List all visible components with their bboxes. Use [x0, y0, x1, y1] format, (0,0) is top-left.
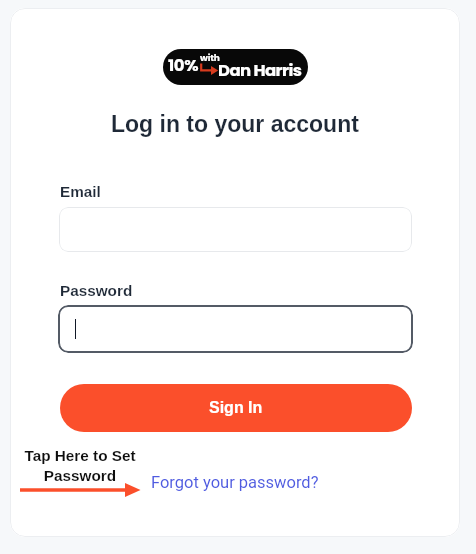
staticText: Email [60, 183, 101, 200]
staticText: Sign In [209, 399, 263, 417]
button[interactable]: Sign In [60, 384, 412, 432]
staticText: Tap Here to Set Password [12, 447, 148, 484]
button[interactable]: Password input field [58, 305, 413, 353]
staticText: Dan Harris [218, 59, 302, 82]
button[interactable]: Forgot your password? [151, 473, 319, 492]
button[interactable]: Ten Percent Happier with Dan Harris [163, 49, 308, 85]
staticText: 10% [168, 54, 199, 77]
staticText: Forgot your password? [151, 473, 319, 492]
staticText: Password [60, 282, 133, 299]
staticText: Log in to your account [111, 111, 359, 137]
button[interactable]: Email input field [59, 207, 412, 252]
staticText: with [200, 52, 220, 65]
